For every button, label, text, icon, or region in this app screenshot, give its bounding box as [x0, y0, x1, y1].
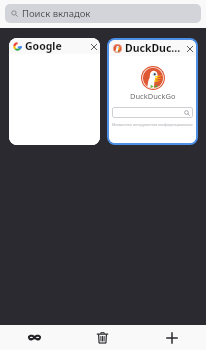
- button[interactable]: Close tab: [88, 41, 99, 52]
- button[interactable]: Google: [9, 38, 100, 145]
- button[interactable]: Private browsing: [0, 325, 68, 350]
- staticText: Google: [25, 39, 86, 53]
- staticText: Множество инструментов конфиденциальност…: [112, 122, 193, 127]
- button[interactable]: DuckDuc...: [107, 38, 198, 145]
- button[interactable]: Close tab: [184, 43, 195, 54]
- button[interactable]: Close all tabs: [68, 325, 137, 350]
- staticText: DuckDuckGo: [130, 91, 176, 101]
- staticText: DuckDuc...: [125, 41, 182, 55]
- button[interactable]: Поиск вкладок: [5, 4, 201, 23]
- button[interactable]: New tab: [137, 325, 206, 350]
- staticText: Поиск вкладок: [22, 7, 91, 20]
